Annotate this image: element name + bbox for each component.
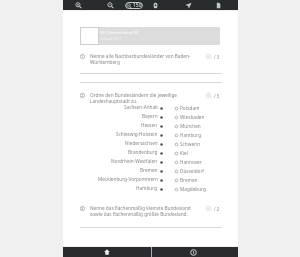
button[interactable]: Bremen xyxy=(63,167,238,176)
staticText: Kiel xyxy=(180,150,188,156)
button[interactable]: Schleswig-Holstein xyxy=(63,131,238,140)
button[interactable]: Nordrhein-Westfalen xyxy=(63,158,238,167)
staticText: Bayern xyxy=(142,113,158,119)
staticText: Hamburg xyxy=(180,132,202,138)
staticText: Wiesbaden xyxy=(180,114,205,120)
staticText: / 5 xyxy=(214,93,220,99)
staticText: Düsseldorf xyxy=(180,168,204,174)
staticText: Bremen xyxy=(180,177,198,183)
staticText: Bremen xyxy=(140,167,158,173)
button[interactable]: Zoom out xyxy=(107,2,114,9)
staticText: Erdkunde M 5.1 xyxy=(100,37,122,41)
button[interactable]: Hamburg xyxy=(63,185,238,194)
staticText: Nordrhein-Westfalen xyxy=(111,158,158,164)
staticText: Nenne alle Nachbarbundesländer von Baden… xyxy=(90,53,196,65)
staticText: Mecklenburg-Vorpommern xyxy=(98,176,158,182)
button[interactable]: Niedersachsen xyxy=(63,140,238,149)
staticText: Niedersachsen xyxy=(125,140,158,146)
button[interactable]: Zoom level xyxy=(125,2,143,9)
staticText: 1 xyxy=(81,54,84,59)
button[interactable]: Mecklenburg-Vorpommern xyxy=(63,176,238,185)
staticText: 150 xyxy=(133,2,142,9)
button[interactable]: GK Deutschland M xyxy=(80,27,220,45)
button[interactable]: Lock xyxy=(152,2,159,9)
staticText: Brandenburg xyxy=(128,149,158,155)
staticText: / 2 xyxy=(214,206,220,212)
button[interactable]: 1 xyxy=(80,53,222,65)
staticText: Hamburg xyxy=(136,185,158,191)
staticText: Sachsen-Anhalt xyxy=(124,104,158,110)
button[interactable]: 3 xyxy=(80,205,222,217)
staticText: Hessen xyxy=(141,122,158,128)
staticText: Nenne das flächenmäßig kleinste Bundesla… xyxy=(90,205,202,217)
staticText: GK Deutschland M xyxy=(100,29,138,35)
button[interactable]: 2 xyxy=(80,92,222,104)
staticText: / 3 xyxy=(214,54,220,60)
staticText: Magdeburg xyxy=(180,186,206,192)
staticText: 3 xyxy=(81,206,84,211)
button[interactable]: Brandenburg xyxy=(63,149,238,158)
button[interactable]: Share xyxy=(185,2,192,9)
button[interactable]: Bayern xyxy=(63,113,238,122)
staticText: Potsdam xyxy=(180,105,200,111)
staticText: Hannover xyxy=(180,159,202,165)
staticText: München xyxy=(180,123,201,129)
button[interactable]: Hessen xyxy=(63,122,238,131)
button[interactable]: Info xyxy=(152,247,235,257)
button[interactable]: Home xyxy=(63,247,151,257)
button[interactable]: Copy xyxy=(215,2,222,9)
staticText: 2 xyxy=(81,93,84,98)
button[interactable]: Sachsen-Anhalt xyxy=(63,104,238,113)
button[interactable]: Zoom in xyxy=(75,2,82,9)
staticText: Schwerin xyxy=(180,141,201,147)
staticText: Schleswig-Holstein xyxy=(116,131,158,137)
staticText: Ordne den Bundesländern die jeweilige La… xyxy=(90,92,178,104)
